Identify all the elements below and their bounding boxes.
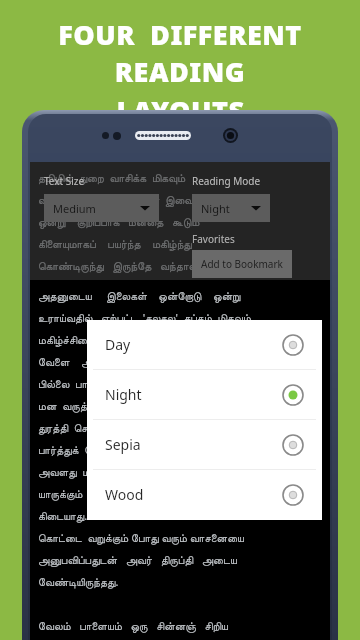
staticText: Medium	[53, 201, 96, 216]
staticText: மகிழ்ச்சியை தந்தது அவருக்கு. ஒரு	[38, 332, 214, 347]
staticText: Text Size	[44, 174, 85, 188]
staticText: கொண்டிருந்து இருந்தே வந்தால்	[38, 258, 198, 273]
staticText: ஒன்று குறிப்பாக மனதை கூடும்	[38, 214, 200, 229]
button[interactable]: Night	[192, 194, 270, 222]
staticText: வேலம் பாளையம் ஒரு சின்னஞ் சிறிய	[38, 618, 228, 633]
staticText: வேண்டியிருந்தது.	[38, 574, 119, 589]
button[interactable]: Sepia	[87, 420, 322, 469]
button[interactable]: Day	[87, 320, 322, 369]
staticText: Wood	[105, 485, 144, 504]
staticText: அவளது மனம் மிகவும் குழம்பி	[38, 464, 186, 479]
staticText: மன வருத்தம் அவளுக்கு மிகுந்த	[38, 398, 194, 413]
staticText: Reading Mode	[192, 174, 261, 188]
staticText: பில்லை பார்த்து மனதை தேற்றிக்	[38, 376, 193, 391]
staticText: Add to Bookmark	[201, 257, 283, 271]
staticText: பார்த்துக் கொண்டே இருந்தது	[38, 442, 179, 457]
button[interactable]: Medium	[44, 194, 159, 222]
staticText: Sepia	[105, 435, 141, 454]
staticText: தமிழில் துறை வாசிக்க மிகவும்	[38, 170, 186, 185]
button[interactable]: Add to Bookmark	[192, 250, 292, 278]
staticText: வேளை அதுதான் காரணமோ எதுவோ-	[38, 354, 243, 369]
button[interactable]: Wood	[87, 470, 322, 519]
other: Select Sepia	[282, 434, 304, 456]
button[interactable]: Night	[87, 370, 322, 419]
other: Select Day	[282, 334, 304, 356]
staticText: LAYOUTS	[116, 92, 245, 129]
staticText: கிடையாது. சில சமயங்களில் காப்பிக்	[38, 508, 221, 523]
staticText: Day	[105, 335, 131, 354]
staticText: Night	[105, 385, 142, 404]
other: Select Night	[282, 384, 304, 406]
staticText: Night	[201, 201, 230, 216]
staticText: FOUR DIFFERENT READING	[0, 16, 360, 90]
staticText: கொட்டை வறுக்கும் போது வரும் வாசனையை	[38, 530, 244, 545]
staticText: துரத்தி சென்ற வேகம் சிறிது	[38, 420, 173, 435]
staticText: யாருக்கும் தெரியாமல் இருக்க	[38, 486, 178, 501]
staticText: விரும்பி எழுதிய கதைகள் இவை	[38, 192, 194, 207]
staticText: உராய்வதில் ஏற்பட்ட 'சலசல' சப்தம் மிகவும்	[38, 310, 251, 325]
staticText: அதனுடைய இலைகள் ஒன்றோடு ஒன்று	[38, 288, 241, 303]
staticText: கிளையுமாகப் பயர்ந்த மகிழ்ந்து	[38, 236, 192, 251]
other: Select Wood	[282, 484, 304, 506]
staticText: அனுபவிப்பதுடன் அவர் திருப்தி அடைய	[38, 552, 237, 567]
staticText: Favorites	[192, 232, 235, 246]
